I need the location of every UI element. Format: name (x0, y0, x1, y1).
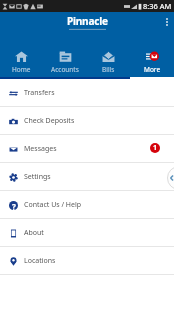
button[interactable]: Settings (0, 163, 174, 191)
staticText: Bills (102, 65, 115, 74)
staticText: Transfers (24, 88, 55, 98)
button[interactable]: More options (160, 12, 174, 32)
staticText: Accounts (51, 65, 79, 74)
button[interactable]: Messages (0, 135, 174, 163)
button[interactable]: About (0, 219, 174, 247)
staticText: Settings (24, 172, 51, 182)
button[interactable]: ? (0, 191, 174, 219)
staticText: More (144, 65, 161, 74)
button[interactable]: Transfers (0, 79, 174, 107)
button[interactable]: Locations (0, 247, 174, 275)
button[interactable]: More (130, 32, 174, 79)
staticText: Check Deposits (24, 116, 75, 126)
staticText: Locations (24, 256, 56, 266)
button[interactable]: Home (0, 32, 43, 79)
staticText: Contact Us / Help (24, 200, 82, 210)
staticText: Messages (24, 144, 57, 154)
staticText: Home (12, 65, 31, 74)
staticText: 8:36 AM (143, 1, 172, 11)
staticText: Pinnacle (67, 14, 108, 28)
button[interactable]: Bills (86, 32, 130, 79)
staticText: About (24, 228, 44, 238)
button[interactable]: Open side panel (167, 166, 174, 190)
staticText: ? (12, 201, 16, 210)
button[interactable]: Check Deposits (0, 107, 174, 135)
staticText: 1 (153, 143, 158, 153)
button[interactable]: Accounts (43, 32, 86, 79)
